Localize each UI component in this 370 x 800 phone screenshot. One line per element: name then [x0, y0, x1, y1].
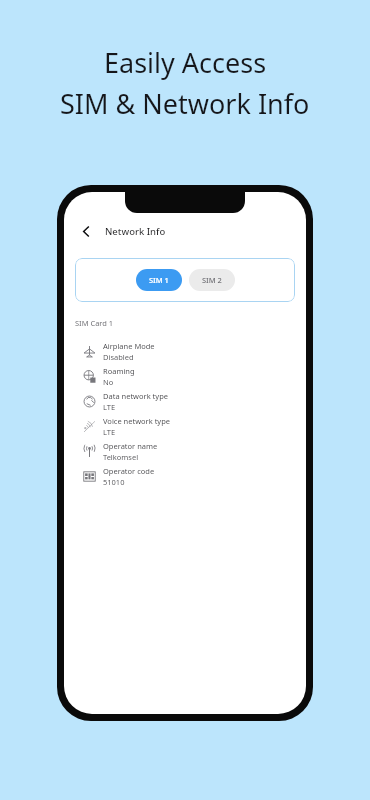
staticText: Airplane Mode: [103, 341, 155, 351]
button[interactable]: SIM 1: [136, 269, 182, 291]
staticText: SIM & Network Info: [60, 85, 310, 122]
staticText: Voice network type: [103, 416, 171, 426]
staticText: Data network type: [103, 391, 168, 401]
button[interactable]: Operator code: [75, 464, 295, 489]
button[interactable]: Back: [75, 220, 97, 242]
staticText: SIM 1: [149, 275, 169, 285]
button[interactable]: SIM 2: [189, 269, 235, 291]
staticText: Roaming: [103, 366, 135, 376]
button[interactable]: Data network type: [75, 389, 295, 414]
staticText: No: [103, 377, 114, 387]
staticText: Easily Access: [104, 44, 267, 81]
button[interactable]: Airplane Mode: [75, 339, 295, 364]
staticText: Operator name: [103, 441, 158, 451]
staticText: 51010: [103, 477, 125, 487]
staticText: Disabled: [103, 352, 134, 362]
staticText: SIM Card 1: [75, 318, 114, 328]
button[interactable]: Voice network type: [75, 414, 295, 439]
staticText: Operator code: [103, 466, 155, 476]
staticText: LTE: [103, 427, 116, 437]
staticText: SIM 2: [202, 275, 222, 285]
staticText: Telkomsel: [103, 452, 139, 462]
button[interactable]: Roaming: [75, 364, 295, 389]
staticText: Network Info: [105, 225, 166, 238]
button[interactable]: Operator name: [75, 439, 295, 464]
staticText: LTE: [103, 402, 116, 412]
